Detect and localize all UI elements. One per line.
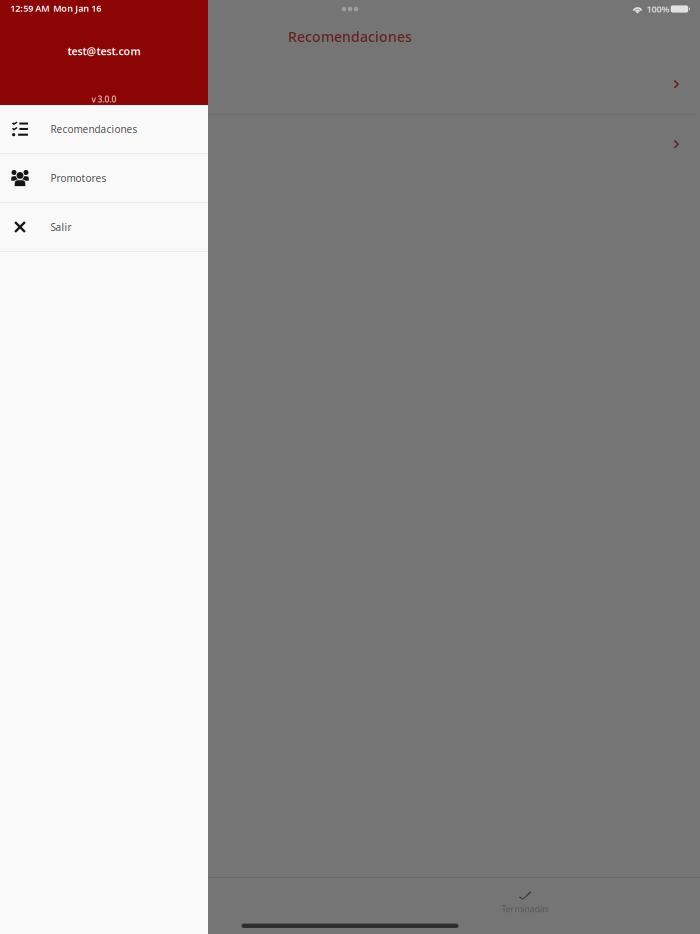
button[interactable]: Salir bbox=[0, 203, 208, 252]
staticText: Salir bbox=[50, 220, 71, 234]
staticText: 12:59 AM Mon Jan 16 bbox=[10, 2, 101, 14]
staticText: Terminadas bbox=[501, 903, 548, 915]
staticText: Recomendaciones bbox=[50, 122, 137, 136]
staticText: 100% bbox=[646, 3, 669, 15]
staticText: v 3.0.0 bbox=[91, 93, 116, 105]
button[interactable]: Promotores bbox=[0, 154, 208, 203]
button[interactable]: ÚLTIMA ACTUALIZACIÓN: bbox=[0, 42, 700, 114]
button[interactable] bbox=[0, 115, 700, 175]
button[interactable]: Pendientes bbox=[0, 887, 350, 919]
staticText: Recomendaciones bbox=[288, 27, 412, 46]
staticText: Promotores bbox=[50, 171, 106, 185]
staticText: test@test.com bbox=[67, 44, 140, 58]
button[interactable]: Recomendaciones bbox=[0, 105, 208, 154]
